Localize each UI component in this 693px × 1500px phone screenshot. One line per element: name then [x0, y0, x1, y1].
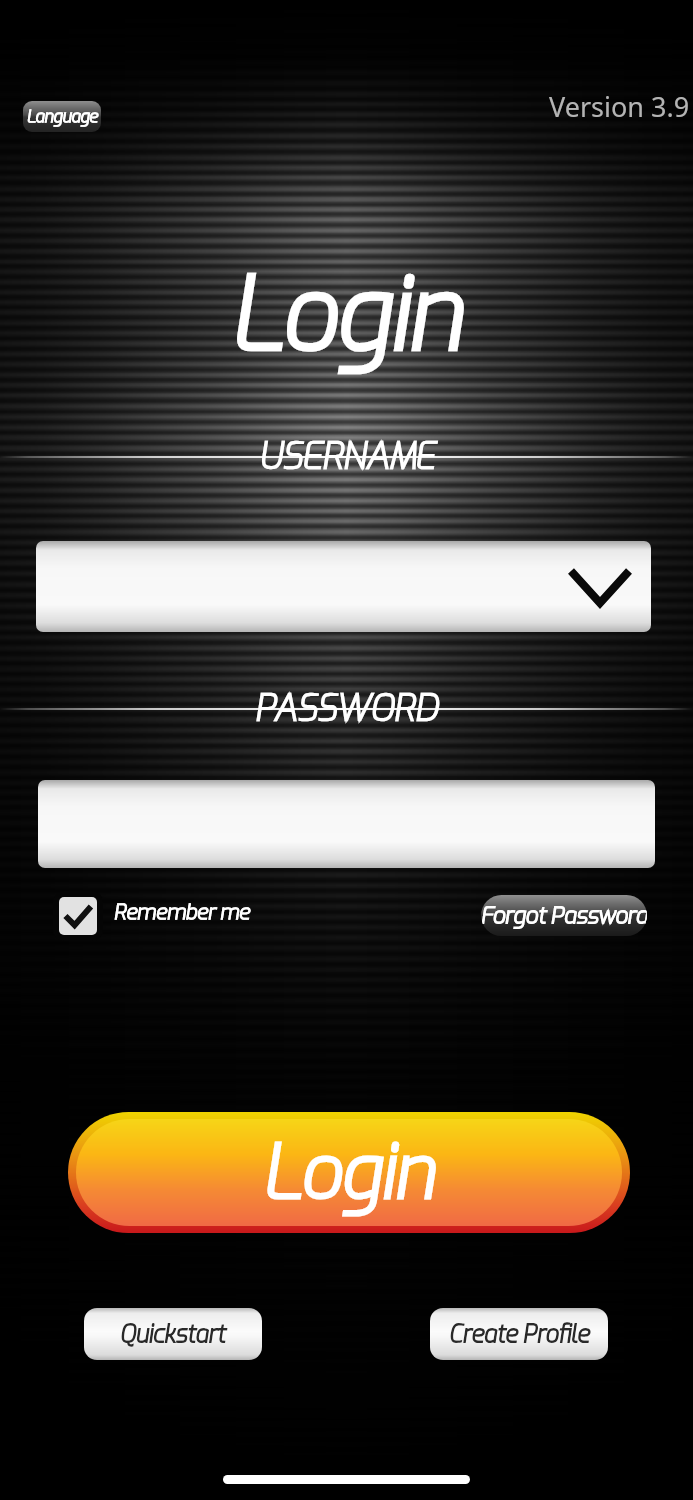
button[interactable]: Quickstart — [84, 1308, 262, 1360]
button[interactable]: Open username list — [36, 541, 651, 632]
button[interactable] — [38, 780, 655, 868]
button[interactable]: Create Profile — [430, 1308, 608, 1360]
staticText: USERNAME — [259, 433, 435, 480]
button[interactable]: Remember me checkbox — [53, 891, 103, 941]
staticText: Version 3.9 — [549, 88, 690, 125]
staticText: Login — [231, 251, 463, 380]
staticText: Language — [27, 106, 98, 127]
button[interactable]: Login — [68, 1112, 630, 1233]
staticText: Login — [263, 1125, 435, 1221]
other: Open username list — [571, 571, 629, 603]
staticText: USERNAME — [259, 433, 435, 480]
staticText: Forgot Password — [481, 901, 647, 930]
staticText: Remember me — [114, 899, 250, 926]
staticText: Quickstart — [120, 1319, 226, 1350]
staticText: Language — [27, 106, 98, 127]
staticText: PASSWORD — [255, 685, 439, 732]
staticText: PASSWORD — [255, 685, 439, 732]
staticText: Remember me — [114, 899, 250, 926]
staticText: Login — [231, 251, 463, 380]
staticText: Login — [263, 1125, 435, 1221]
staticText: Create Profile — [449, 1319, 590, 1350]
button[interactable]: Forgot Password — [481, 895, 647, 936]
staticText: Forgot Password — [481, 901, 647, 930]
staticText: Quickstart — [120, 1319, 226, 1350]
button[interactable]: Language — [23, 101, 101, 132]
staticText: Create Profile — [449, 1319, 590, 1350]
